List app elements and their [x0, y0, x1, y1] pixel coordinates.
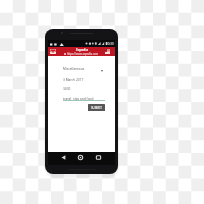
button[interactable]: Home: [76, 153, 85, 162]
staticText: https://www.expedia.com: [67, 52, 99, 56]
staticText: 3430: [63, 87, 71, 91]
staticText: 3 March 2017: [63, 78, 84, 82]
button[interactable]: Recents: [94, 153, 103, 162]
staticText: Miscellaneous: [63, 67, 85, 71]
staticText: Expedia: [76, 48, 88, 52]
button[interactable]: Miscellaneous: [63, 67, 105, 73]
staticText: SUBMIT: [91, 106, 102, 110]
button[interactable]: 3430: [63, 87, 105, 93]
button[interactable]: Expedia logo: [50, 49, 56, 54]
staticText: 10:30: [106, 42, 114, 46]
button[interactable]: travel, stay and food: [63, 97, 105, 103]
button[interactable]: SUBMIT: [88, 104, 105, 111]
button[interactable]: 3 March 2017: [63, 78, 105, 84]
button[interactable]: Account: [105, 49, 110, 54]
button[interactable]: Back: [59, 153, 68, 162]
staticText: travel, stay and food: [63, 97, 94, 101]
